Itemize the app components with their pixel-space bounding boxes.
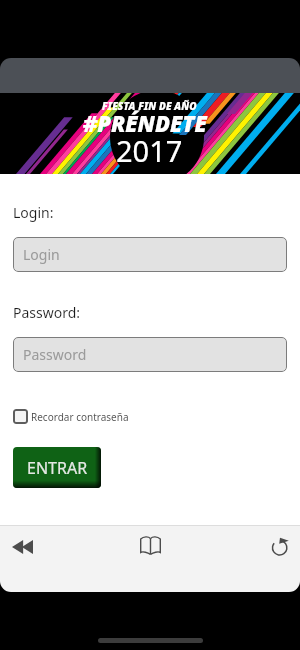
- button[interactable]: Reader view: [129, 525, 172, 567]
- staticText: Password: [23, 345, 87, 364]
- staticText: ENTRAR: [27, 457, 88, 479]
- button[interactable]: Password: [13, 337, 287, 372]
- staticText: Password:: [13, 303, 81, 322]
- staticText: FIESTA FIN DE AÑO: [102, 99, 197, 113]
- staticText: Login:: [13, 203, 54, 222]
- button[interactable]: Recordar contraseña: [13, 409, 129, 424]
- staticText: Recordar contraseña: [31, 410, 129, 424]
- button[interactable]: Login: [13, 237, 287, 272]
- staticText: 2017: [116, 131, 183, 170]
- button[interactable]: Address bar: [0, 58, 300, 93]
- staticText: #PRÉNDETE: [83, 108, 207, 138]
- button[interactable]: Back: [1, 525, 44, 568]
- button[interactable]: Reload: [258, 525, 300, 567]
- staticText: Login: [23, 245, 60, 264]
- button[interactable]: FIESTA FIN DE AÑO: [0, 93, 300, 174]
- button[interactable]: ENTRAR: [13, 447, 101, 488]
